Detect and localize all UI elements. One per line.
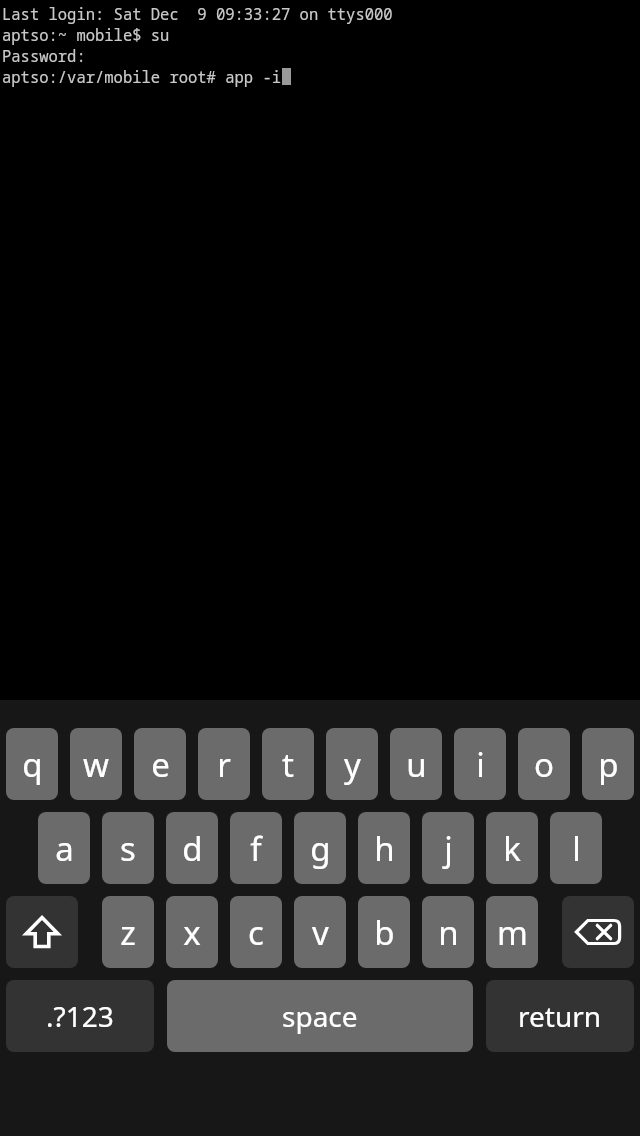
staticText: k (503, 826, 521, 871)
button[interactable]: r (198, 728, 250, 800)
button[interactable]: o (518, 728, 570, 800)
button[interactable]: space (167, 980, 473, 1052)
staticText: h (374, 826, 395, 871)
staticText: o (534, 742, 554, 787)
staticText: q (22, 742, 43, 787)
button[interactable]: b (358, 896, 410, 968)
button[interactable]: p (582, 728, 634, 800)
button[interactable]: q (6, 728, 58, 800)
staticText: t (282, 742, 294, 787)
button[interactable]: c (230, 896, 282, 968)
staticText: u (406, 742, 427, 787)
button[interactable]: g (294, 812, 346, 884)
button[interactable]: y (326, 728, 378, 800)
button[interactable]: t (262, 728, 314, 800)
staticText: c (248, 910, 264, 955)
button[interactable]: j (422, 812, 474, 884)
staticText: return (518, 997, 602, 1035)
button[interactable]: l (550, 812, 602, 884)
staticText: Last login: Sat Dec 9 09:33:27 on ttys00… (2, 3, 393, 24)
button[interactable]: i (454, 728, 506, 800)
button[interactable]: u (390, 728, 442, 800)
staticText: e (151, 742, 170, 787)
button[interactable]: z (102, 896, 154, 968)
staticText: aptso:~ mobile$ su (2, 24, 170, 45)
staticText: aptso:/var/mobile root# app -i (2, 66, 282, 87)
staticText: .?123 (46, 997, 114, 1035)
button[interactable]: Backspace (562, 896, 634, 968)
button[interactable]: m (486, 896, 538, 968)
staticText: l (572, 826, 581, 871)
staticText: x (183, 910, 201, 955)
button[interactable]: v (294, 896, 346, 968)
staticText: w (83, 742, 109, 787)
staticText: j (444, 826, 453, 871)
staticText: g (310, 826, 331, 871)
staticText: i (476, 742, 485, 787)
staticText: y (344, 742, 361, 787)
button[interactable]: x (166, 896, 218, 968)
staticText: n (438, 910, 459, 955)
staticText: b (374, 910, 395, 955)
button[interactable]: f (230, 812, 282, 884)
staticText: r (217, 742, 231, 787)
staticText: v (312, 910, 329, 955)
button[interactable]: w (70, 728, 122, 800)
button[interactable]: return (486, 980, 634, 1052)
button[interactable]: k (486, 812, 538, 884)
button[interactable]: a (38, 812, 90, 884)
staticText: z (120, 910, 136, 955)
staticText: f (250, 826, 262, 871)
staticText: s (120, 826, 136, 871)
button[interactable]: Shift (6, 896, 78, 968)
button[interactable]: h (358, 812, 410, 884)
button[interactable]: s (102, 812, 154, 884)
button[interactable]: e (134, 728, 186, 800)
staticText: space (282, 997, 358, 1035)
button[interactable]: .?123 (6, 980, 154, 1052)
staticText: a (55, 826, 74, 871)
staticText: m (497, 910, 528, 955)
staticText: d (182, 826, 203, 871)
button[interactable]: d (166, 812, 218, 884)
staticText: Password: (2, 45, 86, 66)
button[interactable]: n (422, 896, 474, 968)
staticText: p (598, 742, 619, 787)
